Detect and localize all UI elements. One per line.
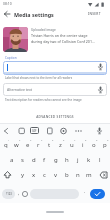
- staticText: 4: [41, 139, 43, 142]
- button[interactable]: ADVANCED SETTINGS: [0, 115, 110, 119]
- staticText: GIF: [32, 129, 37, 133]
- button[interactable]: s: [17, 153, 28, 167]
- staticText: w: [14, 141, 19, 149]
- button[interactable]: [3, 10, 11, 18]
- staticText: h: [65, 156, 69, 164]
- staticText: Alternative text: [7, 87, 33, 92]
- staticText: 2: [19, 139, 21, 142]
- staticText: 1: [8, 139, 10, 142]
- staticText: g: [54, 156, 58, 164]
- staticText: f: [43, 156, 46, 164]
- button[interactable]: x: [28, 168, 39, 182]
- button[interactable]: w: [11, 138, 22, 152]
- staticText: 3: [30, 139, 32, 142]
- button[interactable]: e: [22, 138, 33, 152]
- button[interactable]: [3, 61, 107, 75]
- staticText: Uploaded image: [31, 28, 56, 32]
- staticText: o: [92, 141, 96, 149]
- staticText: 8: [85, 139, 87, 142]
- button[interactable]: p: [99, 138, 110, 152]
- button[interactable]: m: [83, 168, 94, 182]
- staticText: 0: [107, 139, 109, 142]
- staticText: Caption: [5, 56, 17, 60]
- button[interactable]: j: [72, 153, 83, 167]
- button[interactable]: f: [39, 153, 50, 167]
- staticText: u: [70, 141, 74, 149]
- button[interactable]: [3, 27, 28, 52]
- staticText: 7: [74, 139, 76, 142]
- button[interactable]: ?123: [2, 189, 15, 199]
- button[interactable]: h: [61, 153, 72, 167]
- button[interactable]: a: [6, 153, 17, 167]
- button[interactable]: y: [17, 168, 28, 182]
- button[interactable]: l: [94, 153, 105, 167]
- staticText: y: [21, 171, 25, 179]
- staticText: z: [59, 141, 62, 149]
- button[interactable]: d: [28, 153, 39, 167]
- button[interactable]: q: [0, 138, 11, 152]
- button[interactable]: [96, 168, 109, 182]
- staticText: m: [86, 171, 92, 179]
- button[interactable]: INSERT: [0, 0, 13, 4]
- staticText: d: [32, 156, 36, 164]
- button[interactable]: k: [83, 153, 94, 167]
- button[interactable]: GIF: [30, 127, 39, 134]
- button[interactable]: g: [50, 153, 61, 167]
- staticText: 5: [52, 139, 54, 142]
- button[interactable]: v: [50, 168, 61, 182]
- button[interactable]: o: [88, 138, 99, 152]
- staticText: 08:10: [3, 1, 12, 6]
- staticText: a: [10, 156, 14, 164]
- staticText: 9: [96, 139, 98, 142]
- staticText: i: [82, 141, 84, 149]
- button[interactable]: Alternative text: [3, 83, 107, 96]
- button[interactable]: i: [77, 138, 88, 152]
- button[interactable]: z: [55, 138, 66, 152]
- staticText: 6: [63, 139, 65, 142]
- button[interactable]: n: [72, 168, 83, 182]
- staticText: p: [103, 141, 107, 149]
- staticText: k: [87, 156, 91, 164]
- staticText: Media settings: [14, 11, 54, 18]
- staticText: Text description for readers who cannot …: [5, 98, 82, 102]
- staticText: t: [48, 141, 51, 149]
- staticText: v: [54, 171, 58, 179]
- button[interactable]: t: [44, 138, 55, 152]
- button[interactable]: [30, 189, 79, 199]
- staticText: b: [65, 171, 69, 179]
- button[interactable]: [1, 168, 14, 182]
- staticText: l: [99, 156, 101, 164]
- button[interactable]: c: [39, 168, 50, 182]
- staticText: j: [77, 156, 79, 164]
- staticText: Label that shows next to the item for al…: [5, 76, 73, 80]
- button[interactable]: [90, 189, 105, 199]
- staticText: n: [76, 171, 80, 179]
- staticText: x: [32, 171, 36, 179]
- staticText: during day two of Collision Conf 201...: [31, 39, 95, 44]
- button[interactable]: u: [66, 138, 77, 152]
- staticText: c: [43, 171, 46, 179]
- staticText: e: [26, 141, 30, 149]
- staticText: q: [4, 141, 8, 149]
- staticText: s: [21, 156, 24, 164]
- staticText: r: [37, 141, 40, 149]
- staticText: ?123: [6, 192, 12, 196]
- staticText: Tristan Harris on the center stage: [31, 33, 88, 38]
- button[interactable]: b: [61, 168, 72, 182]
- button[interactable]: r: [33, 138, 44, 152]
